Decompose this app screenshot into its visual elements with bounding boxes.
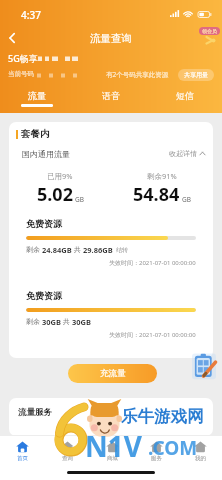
button[interactable]: 分享领会员: [199, 27, 220, 45]
staticText: 已用9%: [47, 171, 73, 181]
staticText: 共享用量: [184, 71, 208, 79]
staticText: 首页: [17, 455, 28, 462]
staticText: 30GB: [42, 317, 61, 327]
staticText: 4:37: [21, 8, 41, 22]
staticText: 共: [61, 317, 72, 327]
staticText: 共: [72, 245, 83, 255]
staticText: 有2个号码共享此资源: [106, 70, 169, 79]
button[interactable]: 共享用量: [178, 69, 214, 81]
button[interactable]: 收起详情: [169, 149, 206, 158]
button[interactable]: 返回: [2, 28, 22, 48]
staticText: 流量查询: [90, 32, 132, 45]
button[interactable]: 意见反馈: [192, 352, 216, 380]
staticText: 失效时间：2021-07-01 00:00:00: [109, 331, 196, 339]
staticText: 结转: [116, 246, 128, 254]
button[interactable]: 查询: [45, 436, 90, 465]
staticText: 24.84GB: [42, 245, 72, 255]
button[interactable]: 流量: [0, 86, 74, 113]
staticText: 国内通用流量: [22, 149, 70, 159]
staticText: 5.02: [37, 182, 73, 207]
staticText: 剩余91%: [147, 171, 177, 181]
staticText: 商城: [107, 455, 118, 462]
button[interactable]: 商城: [90, 436, 134, 465]
staticText: 54.84: [133, 182, 180, 207]
staticText: 短信: [176, 90, 194, 101]
staticText: 剩余: [26, 317, 42, 327]
staticText: 流量: [28, 90, 46, 101]
staticText: 语音: [102, 90, 120, 101]
staticText: N1V: [85, 427, 142, 465]
staticText: 失效时间：2021-07-01 00:00:00: [109, 259, 196, 267]
staticText: 查询: [62, 455, 73, 462]
staticText: .COM: [148, 435, 198, 461]
button[interactable]: 我的: [178, 436, 222, 465]
staticText: 29.86GB: [83, 245, 113, 255]
button[interactable]: 短信: [148, 86, 222, 113]
staticText: 免费资源: [26, 218, 62, 229]
staticText: 5G畅享: [8, 52, 38, 64]
staticText: 当前号码: [8, 70, 34, 78]
staticText: GB: [182, 195, 191, 204]
staticText: 剩余: [26, 245, 42, 255]
staticText: 充流量: [100, 368, 126, 379]
staticText: 免费资源: [26, 290, 62, 301]
staticText: 流量服务: [18, 407, 52, 418]
staticText: 服务: [151, 455, 162, 462]
button[interactable]: 服务: [134, 436, 178, 465]
button[interactable]: 充流量: [68, 364, 157, 383]
staticText: 30GB: [72, 317, 91, 327]
staticText: 乐牛游戏网: [121, 406, 204, 427]
staticText: 领会员: [202, 28, 217, 34]
staticText: 收起详情: [169, 149, 197, 158]
staticText: GB: [75, 195, 84, 204]
staticText: 我的: [195, 455, 206, 462]
button[interactable]: 语音: [74, 86, 148, 113]
staticText: 套餐内: [21, 128, 50, 140]
button[interactable]: 首页: [0, 436, 45, 465]
